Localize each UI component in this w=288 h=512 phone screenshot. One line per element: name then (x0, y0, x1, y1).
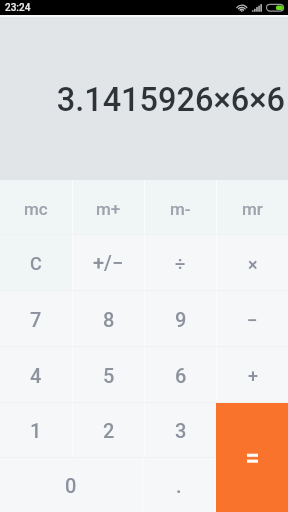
button[interactable]: . (143, 458, 215, 512)
staticText: 0 (65, 474, 77, 497)
staticText: − (247, 309, 258, 331)
button[interactable]: Equals (216, 403, 288, 512)
staticText: m- (170, 199, 191, 219)
button[interactable]: 6 (145, 347, 216, 402)
button[interactable]: × (217, 235, 288, 290)
staticText: 8 (103, 308, 115, 331)
staticText: C (30, 253, 42, 274)
staticText: 23:24 (5, 2, 31, 14)
button[interactable]: 7 (0, 291, 72, 346)
staticText: 3 (175, 419, 187, 442)
button[interactable]: mc (0, 180, 72, 234)
staticText: 2 (103, 419, 115, 442)
button[interactable]: 5 (73, 347, 144, 402)
staticText: mr (242, 199, 263, 219)
button[interactable]: 9 (145, 291, 216, 346)
button[interactable]: 8 (73, 291, 144, 346)
staticText: mc (24, 199, 48, 219)
button[interactable]: 0 (0, 458, 142, 512)
staticText: +/− (93, 251, 124, 274)
button[interactable]: 4 (0, 347, 72, 402)
staticText: × (248, 254, 258, 275)
staticText: 7 (30, 308, 42, 331)
staticText: 1 (30, 419, 42, 442)
button[interactable]: + (217, 347, 288, 402)
button[interactable]: C (0, 235, 72, 290)
button[interactable]: m+ (73, 180, 144, 234)
staticText: . (176, 474, 182, 497)
staticText: 4 (30, 364, 42, 387)
button[interactable]: mr (217, 180, 288, 234)
staticText: 3.1415926×6×6 (56, 81, 285, 119)
button[interactable]: 2 (73, 403, 144, 457)
staticText: 5 (103, 364, 115, 387)
button[interactable]: 1 (0, 403, 72, 457)
staticText: m+ (96, 199, 121, 219)
button[interactable]: +/− (73, 235, 144, 290)
button[interactable]: 3 (145, 403, 216, 457)
staticText: 9 (175, 308, 187, 331)
button[interactable]: ÷ (145, 235, 216, 290)
button[interactable]: m- (145, 180, 216, 234)
button[interactable]: − (217, 291, 288, 346)
staticText: 6 (175, 364, 187, 387)
staticText: ÷ (175, 253, 186, 274)
staticText: + (248, 365, 258, 386)
